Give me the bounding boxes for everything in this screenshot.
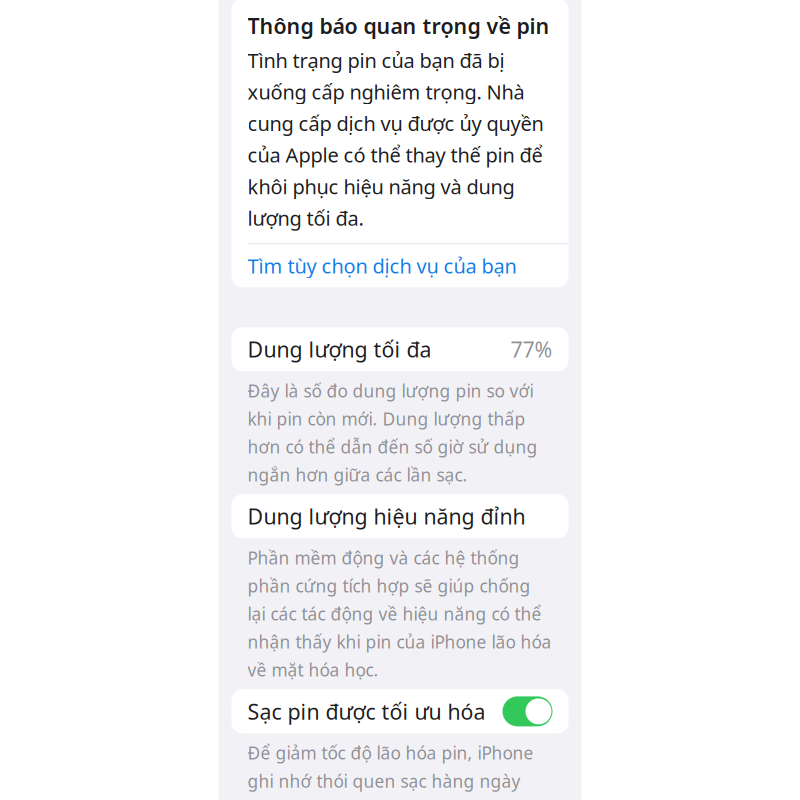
staticText: Tìm tùy chọn dịch vụ của bạn bbox=[247, 252, 516, 279]
staticText: Dung lượng hiệu năng đỉnh bbox=[247, 502, 525, 530]
button[interactable]: Dung lượng hiệu năng đỉnh bbox=[231, 494, 568, 538]
staticText: Tình trạng pin của bạn đã bị xuống cấp n… bbox=[247, 47, 543, 231]
button[interactable]: Sạc pin được tối ưu hóa bbox=[231, 689, 568, 733]
staticText: Dung lượng tối đa bbox=[247, 335, 431, 363]
staticText: 77% bbox=[510, 335, 552, 363]
staticText: Đây là số đo dung lượng pin so với khi p… bbox=[247, 379, 537, 486]
button[interactable]: Tìm tùy chọn dịch vụ của bạn bbox=[231, 244, 568, 287]
staticText: Để giảm tốc độ lão hóa pin, iPhone ghi n… bbox=[247, 741, 552, 800]
staticText: Phần mềm động và các hệ thống phần cứng … bbox=[247, 546, 551, 681]
staticText: Sạc pin được tối ưu hóa bbox=[247, 697, 485, 725]
staticText: Thông báo quan trọng về pin bbox=[247, 11, 549, 40]
button[interactable]: Dung lượng tối đa bbox=[231, 327, 568, 371]
